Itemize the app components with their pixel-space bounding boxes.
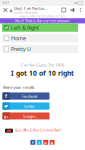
button[interactable]: Pretty U [2,45,78,53]
staticText: I got 10 of 10 right [11,69,74,78]
staticText: Nice! That is the correct answer. [15,18,70,23]
staticText: Quiz: Can You Guess The 100% [14,6,47,11]
button[interactable]: f [2,92,49,100]
staticText: Pretty U [11,45,31,53]
staticText: Left & Right [11,24,39,31]
staticText: quizdelivery.com [14,11,37,14]
staticText: p [44,140,47,145]
staticText: Facebook [22,93,38,99]
staticText: g [51,140,54,145]
button[interactable]: Home [2,34,78,42]
staticText: Google+ [23,113,37,119]
staticText: Twitter [24,103,36,109]
staticText: f [32,140,34,145]
button[interactable]: g+ [2,112,49,120]
button[interactable]: Share [43,140,48,145]
button[interactable]: Share [30,140,35,145]
staticText: LTE [74,1,77,5]
staticText: t [38,140,40,145]
button[interactable]: Twitter [2,102,49,110]
button[interactable]: More options [77,6,84,14]
button[interactable]: Left & Right [2,23,78,32]
button[interactable]: Tabs [60,6,68,14]
staticText: www.quizdelivery.com/quiz-result [19,15,65,18]
staticText: Share your results [2,85,34,90]
staticText: 9:41 [2,1,9,5]
button[interactable]: Share [50,140,55,145]
button[interactable]: Close tab [1,6,10,14]
staticText: f [5,92,7,100]
staticText: Home [11,35,26,42]
staticText: Can You Guess The 100% [21,62,64,67]
button[interactable]: Share [37,140,42,145]
staticText: Quiz: Who Is Your Celebrity Twin? [15,129,61,132]
button[interactable]: Share [68,6,77,14]
staticText: g+ [4,113,9,119]
